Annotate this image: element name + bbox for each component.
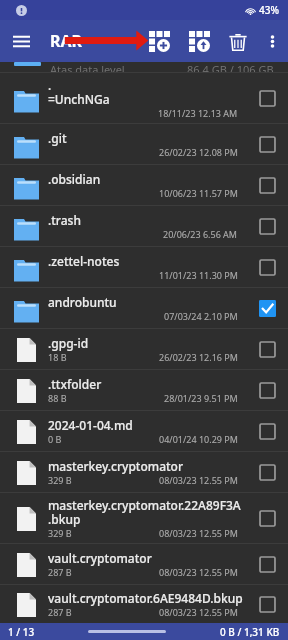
button[interactable]: Select item	[246, 247, 288, 287]
staticText: 18 B	[48, 351, 67, 363]
staticText: 20/06/23 6.56 AM	[163, 228, 238, 240]
button[interactable]: vault.cryptomator.6AE9484D.bkup	[0, 585, 288, 623]
button[interactable]: masterkey.cryptomator.22A89F3A .bkup	[0, 493, 288, 543]
staticText: 08/03/23 12.55 PM	[159, 606, 238, 618]
staticText: 329 B	[48, 527, 72, 539]
staticText: masterkey.cryptomator	[48, 458, 184, 474]
button[interactable]: Select item	[246, 585, 288, 623]
button[interactable]: Deselect item	[246, 288, 288, 328]
button[interactable]: More options	[256, 25, 288, 57]
staticText: 1 / 13	[8, 625, 35, 639]
staticText: 10/06/23 11.57 PM	[159, 187, 238, 199]
staticText: 329 B	[48, 474, 72, 486]
staticText: . =UnchNGa	[48, 77, 110, 107]
staticText: 2024-01-04.md	[48, 417, 133, 433]
button[interactable]: Select item	[246, 124, 288, 164]
staticText: 08/03/23 12.55 PM	[159, 566, 238, 578]
staticText: 287 B	[48, 566, 72, 578]
button[interactable]: 2024-01-04.md	[0, 411, 288, 451]
button[interactable]: vault.cryptomator	[0, 544, 288, 584]
staticText: RAR	[50, 30, 83, 52]
button[interactable]: Add to archive	[139, 21, 179, 61]
button[interactable]: Select item	[246, 411, 288, 451]
button[interactable]: Open navigation drawer	[0, 20, 42, 62]
button[interactable]: .gpg-id	[0, 329, 288, 369]
staticText: 88 B	[48, 392, 67, 404]
button[interactable]: Select item	[246, 329, 288, 369]
staticText: androbuntu	[48, 294, 117, 310]
staticText: .git	[48, 130, 67, 146]
staticText: masterkey.cryptomator.22A89F3A .bkup	[48, 497, 241, 527]
staticText: 26/02/23 12.16 PM	[159, 351, 238, 363]
staticText: 287 B	[48, 606, 72, 618]
button[interactable]: Select item	[246, 493, 288, 543]
button[interactable]: . =UnchNGa	[0, 73, 288, 123]
staticText: 0 B / 1,31 KB	[220, 625, 280, 639]
button[interactable]: Select item	[246, 206, 288, 246]
button[interactable]: .git	[0, 124, 288, 164]
button[interactable]: Select item	[246, 370, 288, 410]
staticText: 43%	[259, 3, 279, 17]
staticText: 0 B	[48, 433, 62, 445]
staticText: 07/03/24 2.10 PM	[164, 310, 238, 322]
button[interactable]: .trash	[0, 206, 288, 246]
staticText: Atas data level	[50, 62, 125, 72]
staticText: vault.cryptomator.6AE9484D.bkup	[48, 590, 243, 606]
staticText: .ttxfolder	[48, 376, 102, 392]
staticText: .obsidian	[48, 171, 101, 187]
button[interactable]: .zettel-notes	[0, 247, 288, 287]
staticText: vault.cryptomator	[48, 550, 152, 566]
staticText: .trash	[48, 212, 81, 228]
button[interactable]: Select item	[246, 544, 288, 584]
button[interactable]: .obsidian	[0, 165, 288, 205]
staticText: 08/03/23 12.55 PM	[159, 527, 238, 539]
button[interactable]: Extract archive	[179, 21, 219, 61]
staticText: 28/01/23 9.51 PM	[164, 392, 238, 404]
staticText: 04/01/24 10.29 PM	[159, 433, 238, 445]
staticText: 86,4 GB / 106 GB	[187, 62, 274, 72]
button[interactable]: Select item	[246, 73, 288, 123]
button[interactable]: Select item	[246, 452, 288, 492]
staticText: 11/01/23 11.30 PM	[159, 269, 238, 281]
staticText: .zettel-notes	[48, 253, 120, 269]
button[interactable]: .ttxfolder	[0, 370, 288, 410]
button[interactable]: masterkey.cryptomator	[0, 452, 288, 492]
button[interactable]: Select item	[246, 165, 288, 205]
button[interactable]: androbuntu	[0, 288, 288, 328]
staticText: 26/02/23 12.08 PM	[159, 146, 238, 158]
staticText: 18/11/23 12.13 AM	[158, 107, 238, 119]
staticText: 08/03/23 12.55 PM	[159, 474, 238, 486]
button[interactable]: Delete	[219, 23, 256, 60]
staticText: .gpg-id	[48, 335, 89, 351]
